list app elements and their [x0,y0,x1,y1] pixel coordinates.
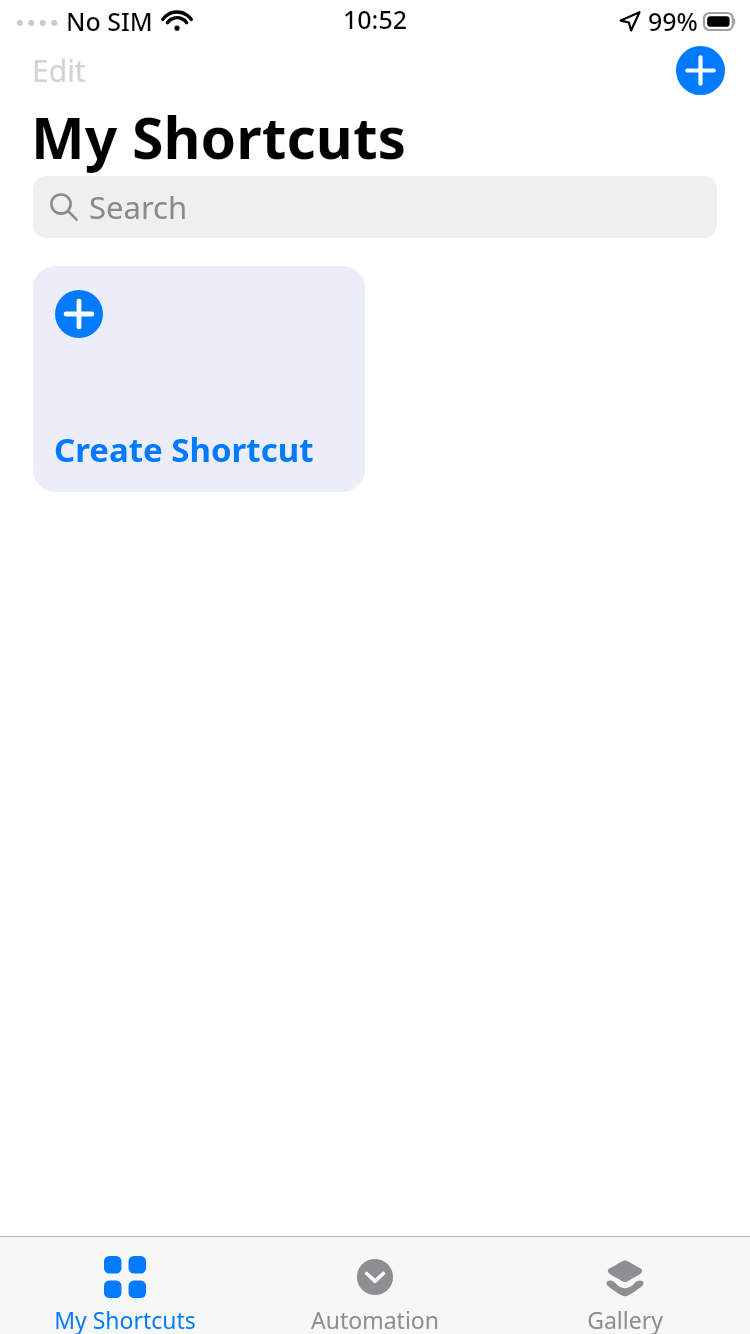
staticText: My Shortcuts [31,98,407,176]
button[interactable]: Edit [22,44,96,97]
button[interactable]: Create Shortcut [676,46,725,95]
staticText: 99% [648,4,698,38]
staticText: 10:52 [343,2,408,36]
button[interactable]: Search [33,176,717,238]
button[interactable]: My Shortcuts [0,1237,250,1334]
button[interactable]: Gallery [500,1237,750,1334]
button[interactable]: Create Shortcut [33,266,365,492]
staticText: Create Shortcut [54,427,314,472]
staticText: No SIM [66,4,153,38]
staticText: Search [89,186,188,228]
staticText: My Shortcuts [54,1304,196,1334]
staticText: Gallery [587,1304,663,1334]
staticText: Automation [311,1304,439,1334]
button[interactable]: Automation [250,1237,500,1334]
staticText: Edit [32,50,86,91]
